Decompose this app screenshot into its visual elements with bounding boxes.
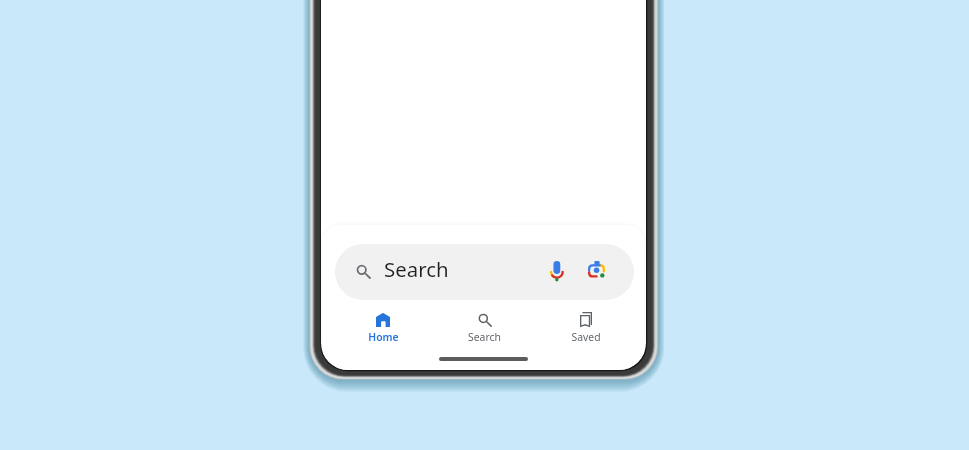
button[interactable]: Home <box>332 312 434 344</box>
button[interactable]: Search <box>434 312 535 344</box>
button[interactable]: Search <box>335 244 634 300</box>
button[interactable]: Voice search <box>544 259 570 285</box>
button[interactable]: Saved <box>535 312 636 344</box>
staticText: Saved <box>571 330 601 344</box>
staticText: Home <box>368 330 399 344</box>
staticText: Search <box>468 330 501 344</box>
button[interactable]: Google Lens <box>583 259 609 285</box>
staticText: Search <box>384 255 449 283</box>
